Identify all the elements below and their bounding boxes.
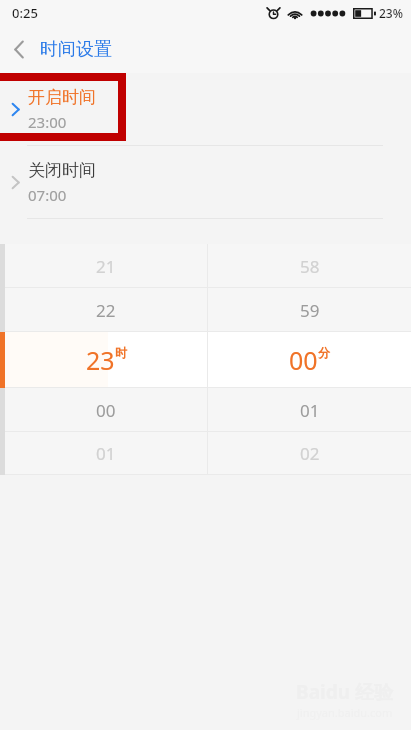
staticText: 59 bbox=[300, 299, 320, 322]
staticText: 02 bbox=[300, 442, 320, 465]
staticText: 00 bbox=[289, 343, 318, 377]
staticText: 58 bbox=[300, 255, 320, 278]
staticText: 23 bbox=[86, 343, 115, 377]
staticText: 21 bbox=[96, 255, 116, 278]
staticText: 关闭时间 bbox=[28, 160, 96, 181]
button[interactable]: 01 bbox=[0, 432, 411, 475]
staticText: 23% bbox=[379, 5, 403, 21]
staticText: 23:00 bbox=[28, 112, 67, 132]
staticText: 开启时间 bbox=[28, 87, 96, 108]
button[interactable]: Back bbox=[0, 30, 128, 69]
button[interactable]: 00 bbox=[0, 388, 411, 432]
button[interactable]: 23 bbox=[0, 332, 411, 388]
staticText: 01 bbox=[300, 399, 320, 422]
staticText: 00 bbox=[96, 399, 116, 422]
button[interactable]: 关闭时间 bbox=[0, 146, 411, 218]
staticText: 时间设置 bbox=[40, 38, 112, 61]
staticText: 时 bbox=[115, 345, 127, 360]
button[interactable]: 开启时间 bbox=[0, 73, 411, 145]
button[interactable]: 22 bbox=[0, 288, 411, 332]
staticText: 01 bbox=[96, 442, 116, 465]
staticText: 0:25 bbox=[12, 4, 38, 22]
staticText: 分 bbox=[318, 345, 330, 360]
button[interactable]: 21 bbox=[0, 244, 411, 288]
staticText: 07:00 bbox=[28, 185, 67, 205]
staticText: 22 bbox=[96, 299, 116, 322]
